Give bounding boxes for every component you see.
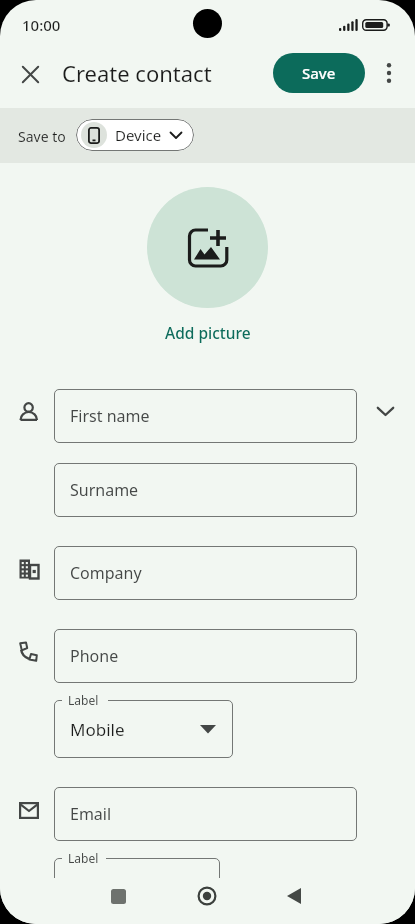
staticText: Device	[115, 125, 162, 145]
staticText: Phone	[70, 645, 119, 667]
staticText: First name	[70, 405, 150, 427]
staticText: Create contact	[62, 58, 212, 88]
button[interactable]	[377, 57, 401, 89]
button[interactable]	[147, 187, 268, 308]
button[interactable]	[185, 881, 229, 911]
staticText: Label	[68, 850, 99, 866]
staticText: Email	[70, 803, 112, 825]
button[interactable]: Device	[76, 119, 194, 151]
button[interactable]: First name	[54, 389, 357, 443]
button[interactable]: Mobile	[54, 700, 233, 758]
button[interactable]: Surname	[54, 463, 357, 517]
staticText: Save	[302, 63, 336, 83]
button[interactable]: Email	[54, 787, 357, 841]
staticText: 10:00	[22, 15, 61, 35]
button[interactable]	[369, 395, 401, 427]
button[interactable]: Phone	[54, 629, 357, 683]
staticText: Company	[70, 562, 142, 584]
staticText: Surname	[70, 479, 139, 501]
button[interactable]	[272, 881, 316, 911]
button[interactable]	[96, 881, 140, 911]
staticText: Label	[68, 692, 99, 708]
staticText: Add picture	[165, 322, 251, 343]
button[interactable]: Add picture	[0, 322, 415, 343]
button[interactable]: Save	[273, 53, 365, 93]
button[interactable]	[14, 61, 46, 87]
button[interactable]: Company	[54, 546, 357, 600]
staticText: Mobile	[70, 718, 125, 741]
staticText: Save to	[18, 127, 66, 146]
